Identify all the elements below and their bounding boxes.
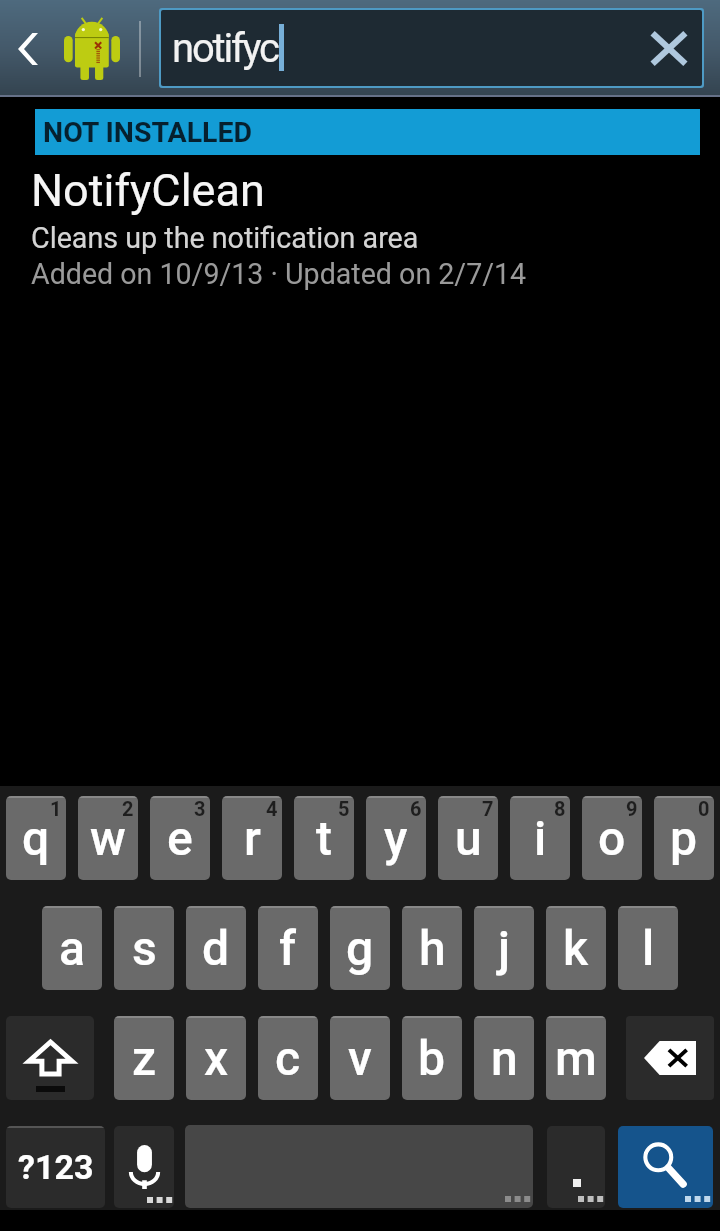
staticText: w [90,810,126,866]
staticText: l [642,920,655,976]
staticText: 6 [410,797,422,820]
staticText: e [167,810,193,866]
staticText: v [348,1030,372,1086]
button[interactable]: z [114,1016,174,1100]
staticText: NotifyClean [31,164,265,217]
button[interactable]: Period [547,1126,605,1208]
button[interactable]: Clear search [640,19,698,77]
button[interactable]: NOT INSTALLED [35,109,700,155]
button[interactable]: d [186,906,246,990]
button[interactable]: u [438,796,498,880]
staticText: ?123 [18,1147,94,1187]
button[interactable]: s [114,906,174,990]
button[interactable]: x [186,1016,246,1100]
staticText: q [22,810,50,866]
staticText: i [534,810,547,866]
staticText: 2 [122,797,134,820]
button[interactable]: f [258,906,318,990]
staticText: 4 [266,797,278,820]
staticText: f [279,920,297,976]
button[interactable]: w [78,796,138,880]
staticText: k [563,920,589,976]
staticText: b [418,1030,446,1086]
button[interactable]: a [42,906,102,990]
staticText: c [275,1030,301,1086]
staticText: o [598,810,626,866]
staticText: x [204,1030,229,1086]
staticText: 8 [554,797,566,820]
staticText: NOT INSTALLED [43,116,253,149]
staticText: j [498,920,511,976]
staticText: notifyc [172,25,278,72]
button[interactable]: Backspace [626,1016,714,1100]
button[interactable]: l [618,906,678,990]
staticText: 1 [50,797,62,820]
staticText: n [491,1030,518,1086]
button[interactable]: y [366,796,426,880]
staticText: g [346,920,374,976]
staticText: h [419,920,446,976]
button[interactable]: j [474,906,534,990]
button[interactable]: m [546,1016,606,1100]
button[interactable]: notifyc [161,10,702,86]
staticText: 3 [194,797,206,820]
staticText: 7 [482,797,494,820]
button[interactable]: g [330,906,390,990]
button[interactable]: v [330,1016,390,1100]
button[interactable]: ?123 [6,1126,105,1208]
staticText: 9 [626,797,638,820]
button[interactable]: b [402,1016,462,1100]
staticText: p [670,810,698,866]
staticText: Added on 10/9/13 · Updated on 2/7/14 [31,257,527,291]
button[interactable]: o [582,796,642,880]
button[interactable]: e [150,796,210,880]
staticText: r [244,810,261,866]
button[interactable]: r [222,796,282,880]
other: App icon [64,17,120,80]
staticText: z [132,1030,157,1086]
staticText: y [384,810,408,866]
staticText: u [455,810,482,866]
staticText: t [316,810,332,866]
button[interactable]: q [6,796,66,880]
staticText: m [555,1030,597,1086]
button[interactable]: n [474,1016,534,1100]
staticText: a [59,920,85,976]
button[interactable]: h [402,906,462,990]
staticText: 0 [698,797,710,820]
button[interactable]: Voice input [114,1126,174,1208]
staticText: d [202,920,230,976]
button[interactable]: p [654,796,714,880]
button[interactable]: t [294,796,354,880]
button[interactable]: Space [185,1125,533,1208]
staticText: 5 [338,797,350,820]
button[interactable]: k [546,906,606,990]
button[interactable]: c [258,1016,318,1100]
staticText: s [132,920,157,976]
button[interactable]: Back [0,25,55,73]
button[interactable]: Shift [6,1016,94,1100]
button[interactable]: i [510,796,570,880]
button[interactable]: Search [618,1126,713,1208]
staticText: Cleans up the notification area [31,221,419,255]
